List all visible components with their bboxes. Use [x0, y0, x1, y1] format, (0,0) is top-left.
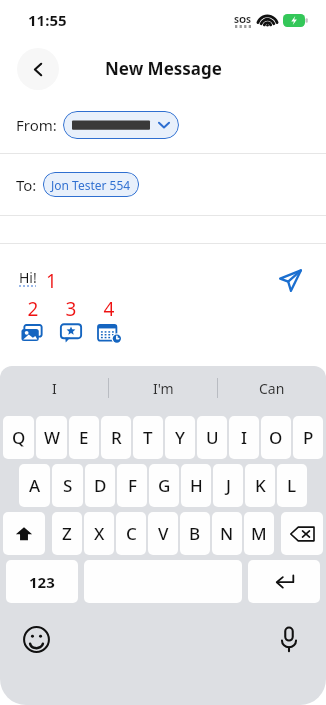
staticText: Q — [12, 426, 26, 449]
button[interactable]: V — [148, 512, 178, 555]
staticText: T — [143, 426, 153, 449]
staticText: B — [189, 522, 201, 545]
button[interactable]: Insert photo — [14, 320, 52, 346]
staticText: I — [52, 379, 57, 398]
button[interactable]: W — [36, 416, 67, 459]
staticText: M — [251, 522, 267, 545]
staticText: Z — [62, 522, 72, 545]
staticText: Can — [259, 379, 285, 398]
button[interactable]: Shift — [3, 512, 45, 555]
button[interactable]: C — [116, 512, 146, 555]
button[interactable]: Emoji — [21, 624, 51, 654]
staticText: I — [241, 426, 248, 449]
button[interactable]: Q — [3, 416, 34, 459]
button[interactable]: B — [180, 512, 210, 555]
staticText: W — [44, 426, 60, 449]
button[interactable]: J — [213, 464, 243, 507]
staticText: U — [206, 426, 219, 449]
staticText: Hi! — [19, 268, 37, 287]
staticText: H — [190, 474, 203, 497]
button[interactable]: Schedule — [90, 320, 128, 346]
staticText: K — [255, 474, 266, 497]
button[interactable]: Backspace — [281, 512, 323, 555]
staticText: N — [220, 522, 234, 545]
staticText: D — [94, 474, 107, 497]
button[interactable]: I'm — [109, 366, 217, 410]
staticText: From: — [16, 115, 57, 135]
button[interactable]: Stickers — [52, 320, 90, 346]
staticText: 2 — [14, 296, 52, 322]
staticText: New Message — [105, 57, 222, 80]
staticText: O — [269, 426, 283, 449]
staticText: J — [226, 474, 231, 497]
staticText: X — [94, 522, 105, 545]
button[interactable]: Can — [218, 366, 326, 410]
button[interactable]: G — [149, 464, 179, 507]
button[interactable]: P — [293, 416, 323, 459]
button[interactable]: 123 — [6, 560, 78, 603]
button[interactable] — [63, 111, 179, 139]
button[interactable]: E — [69, 416, 99, 459]
staticText: Jon Tester 554 — [51, 177, 131, 193]
staticText: SOS — [234, 13, 252, 25]
staticText: 11:55 — [28, 10, 67, 30]
button[interactable]: T — [133, 416, 163, 459]
staticText: A — [29, 474, 41, 497]
button[interactable]: X — [84, 512, 114, 555]
button[interactable]: L — [277, 464, 307, 507]
staticText: S — [63, 474, 73, 497]
button[interactable]: O — [261, 416, 291, 459]
button[interactable]: Z — [52, 512, 82, 555]
button[interactable]: K — [245, 464, 275, 507]
staticText: G — [158, 474, 171, 497]
staticText: I'm — [153, 379, 174, 398]
staticText: L — [287, 474, 297, 497]
staticText: 123 — [29, 572, 55, 592]
button[interactable]: Send — [272, 262, 308, 298]
button[interactable]: Enter — [248, 560, 320, 603]
button[interactable]: S — [52, 464, 83, 507]
staticText: 1 — [46, 268, 57, 294]
button[interactable]: I — [0, 366, 108, 410]
staticText: To: — [16, 175, 37, 195]
staticText: P — [303, 426, 314, 449]
button[interactable]: H — [181, 464, 211, 507]
button[interactable]: R — [101, 416, 131, 459]
staticText: F — [128, 474, 137, 497]
staticText: 3 — [52, 296, 90, 322]
button[interactable]: I — [229, 416, 259, 459]
button[interactable]: U — [197, 416, 227, 459]
staticText: C — [126, 522, 137, 545]
button[interactable]: A — [19, 464, 50, 507]
staticText: Y — [175, 426, 185, 449]
button[interactable]: D — [85, 464, 115, 507]
staticText: E — [79, 426, 89, 449]
button[interactable]: Jon Tester 554 — [43, 172, 139, 197]
button[interactable]: M — [244, 512, 274, 555]
staticText: 4 — [90, 296, 128, 322]
staticText: R — [111, 426, 122, 449]
button[interactable]: Voice input — [274, 624, 304, 654]
button[interactable]: N — [212, 512, 242, 555]
button[interactable]: F — [117, 464, 147, 507]
staticText: V — [158, 522, 169, 545]
button[interactable]: Back — [17, 48, 59, 90]
button[interactable]: Y — [165, 416, 195, 459]
